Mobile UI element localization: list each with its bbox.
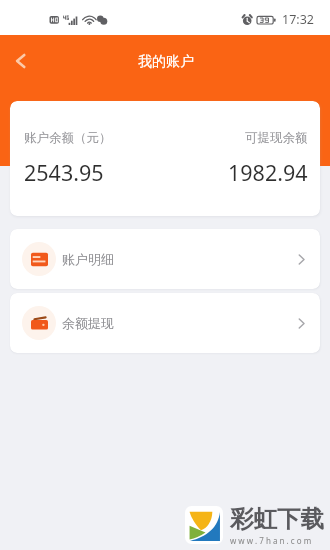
- staticText: 账户余额（元）: [24, 130, 112, 146]
- staticText: 余额提现: [62, 315, 114, 331]
- staticText: 2543.95: [24, 158, 104, 187]
- staticText: w w w . 7 h a n . c o m: [230, 535, 312, 546]
- button[interactable]: 账户明细: [10, 229, 320, 289]
- button[interactable]: Back: [3, 43, 38, 78]
- staticText: 彩虹下载: [230, 504, 324, 534]
- button[interactable]: 余额提现: [10, 293, 320, 353]
- staticText: 可提现余额: [245, 130, 308, 146]
- staticText: 17:32: [282, 11, 314, 28]
- staticText: 我的账户: [138, 53, 194, 71]
- staticText: 1982.94: [228, 158, 308, 187]
- staticText: 账户明细: [62, 251, 114, 267]
